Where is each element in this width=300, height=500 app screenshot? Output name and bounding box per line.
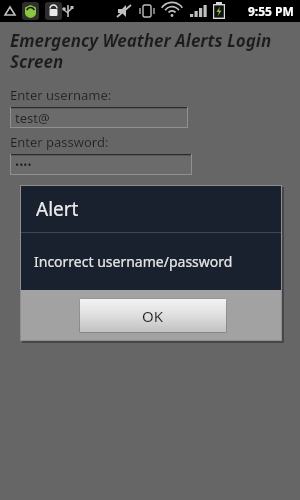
staticText: test@ (15, 109, 50, 127)
staticText: Enter username: (10, 86, 112, 104)
staticText: Alert (36, 196, 79, 222)
staticText: •••• (15, 157, 32, 172)
button[interactable]: OK (79, 298, 227, 333)
button[interactable]: •••• (10, 154, 192, 175)
staticText: 9:55 PM (248, 3, 294, 19)
staticText: OK (142, 306, 164, 326)
staticText: Emergency Weather Alerts Login Screen (10, 29, 280, 73)
button[interactable]: test@ (10, 107, 188, 128)
staticText: Enter password: (10, 133, 109, 151)
staticText: Incorrect username/password (34, 252, 233, 271)
